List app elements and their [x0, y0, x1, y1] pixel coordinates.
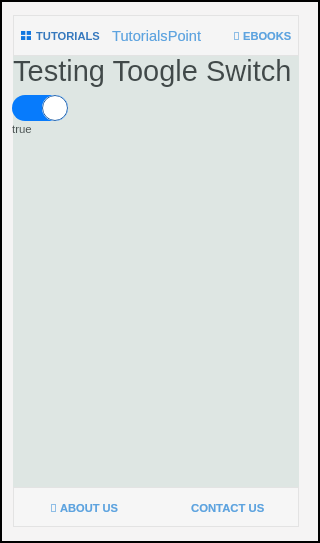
staticText: TUTORIALS	[36, 30, 100, 42]
button[interactable]: EBOOKS	[226, 24, 299, 48]
other: Tutorials menu	[21, 31, 31, 40]
staticText: CONTACT US	[191, 502, 265, 515]
button[interactable]: Tutorials menu	[13, 24, 106, 48]
staticText: Testing Toogle Switch	[13, 55, 292, 87]
staticText: true	[12, 123, 32, 136]
button[interactable]: CONTACT US	[156, 488, 299, 528]
staticText: ABOUT US	[60, 502, 119, 514]
staticText: TutorialsPoint	[112, 28, 202, 44]
button[interactable]: Toggle switch, on	[12, 95, 68, 121]
button[interactable]: ABOUT US	[13, 488, 156, 528]
button[interactable]: TutorialsPoint	[110, 22, 204, 50]
staticText: EBOOKS	[243, 30, 292, 42]
